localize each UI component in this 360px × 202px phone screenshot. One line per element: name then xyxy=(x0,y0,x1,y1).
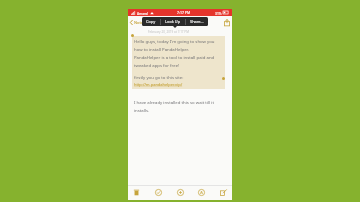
staticText: http://m.pandahelper.vip/ xyxy=(134,82,183,87)
button[interactable]: http://m.pandahelper.vip/ xyxy=(134,82,183,87)
button[interactable]: Markup xyxy=(197,188,206,197)
button[interactable]: Add attachment xyxy=(176,188,185,197)
button[interactable]: Share… xyxy=(186,18,208,25)
staticText: 7:17 PM xyxy=(177,10,191,15)
staticText: installs. xyxy=(134,107,150,113)
button[interactable]: Back to Notes xyxy=(128,18,148,27)
staticText: how to install PandaHelper. xyxy=(134,46,189,52)
staticText: Hello guys, today I'm going to show you xyxy=(134,38,215,44)
button[interactable]: Look Up xyxy=(161,18,185,25)
staticText: Look Up xyxy=(165,19,181,24)
staticText: 31% xyxy=(215,11,222,15)
staticText: tweaked apps for free! xyxy=(134,62,180,68)
button[interactable]: Delete xyxy=(132,188,141,197)
staticText: Copy xyxy=(146,19,156,24)
staticText: firstly you go to this site: xyxy=(134,74,184,80)
staticText: Amaral xyxy=(137,11,149,15)
staticText: February 20, 2019 at 7:17 PM xyxy=(148,30,189,34)
staticText: I have already installed this so wait ti… xyxy=(134,99,215,105)
staticText: Notes xyxy=(134,20,146,25)
button[interactable]: Copy xyxy=(142,18,160,25)
staticText: PandaHelper is a tool to install paid an… xyxy=(134,54,215,60)
button[interactable]: Checklist xyxy=(154,188,163,197)
button[interactable]: Share xyxy=(222,17,232,28)
button[interactable]: New note xyxy=(219,188,228,197)
staticText: Share… xyxy=(190,19,204,24)
